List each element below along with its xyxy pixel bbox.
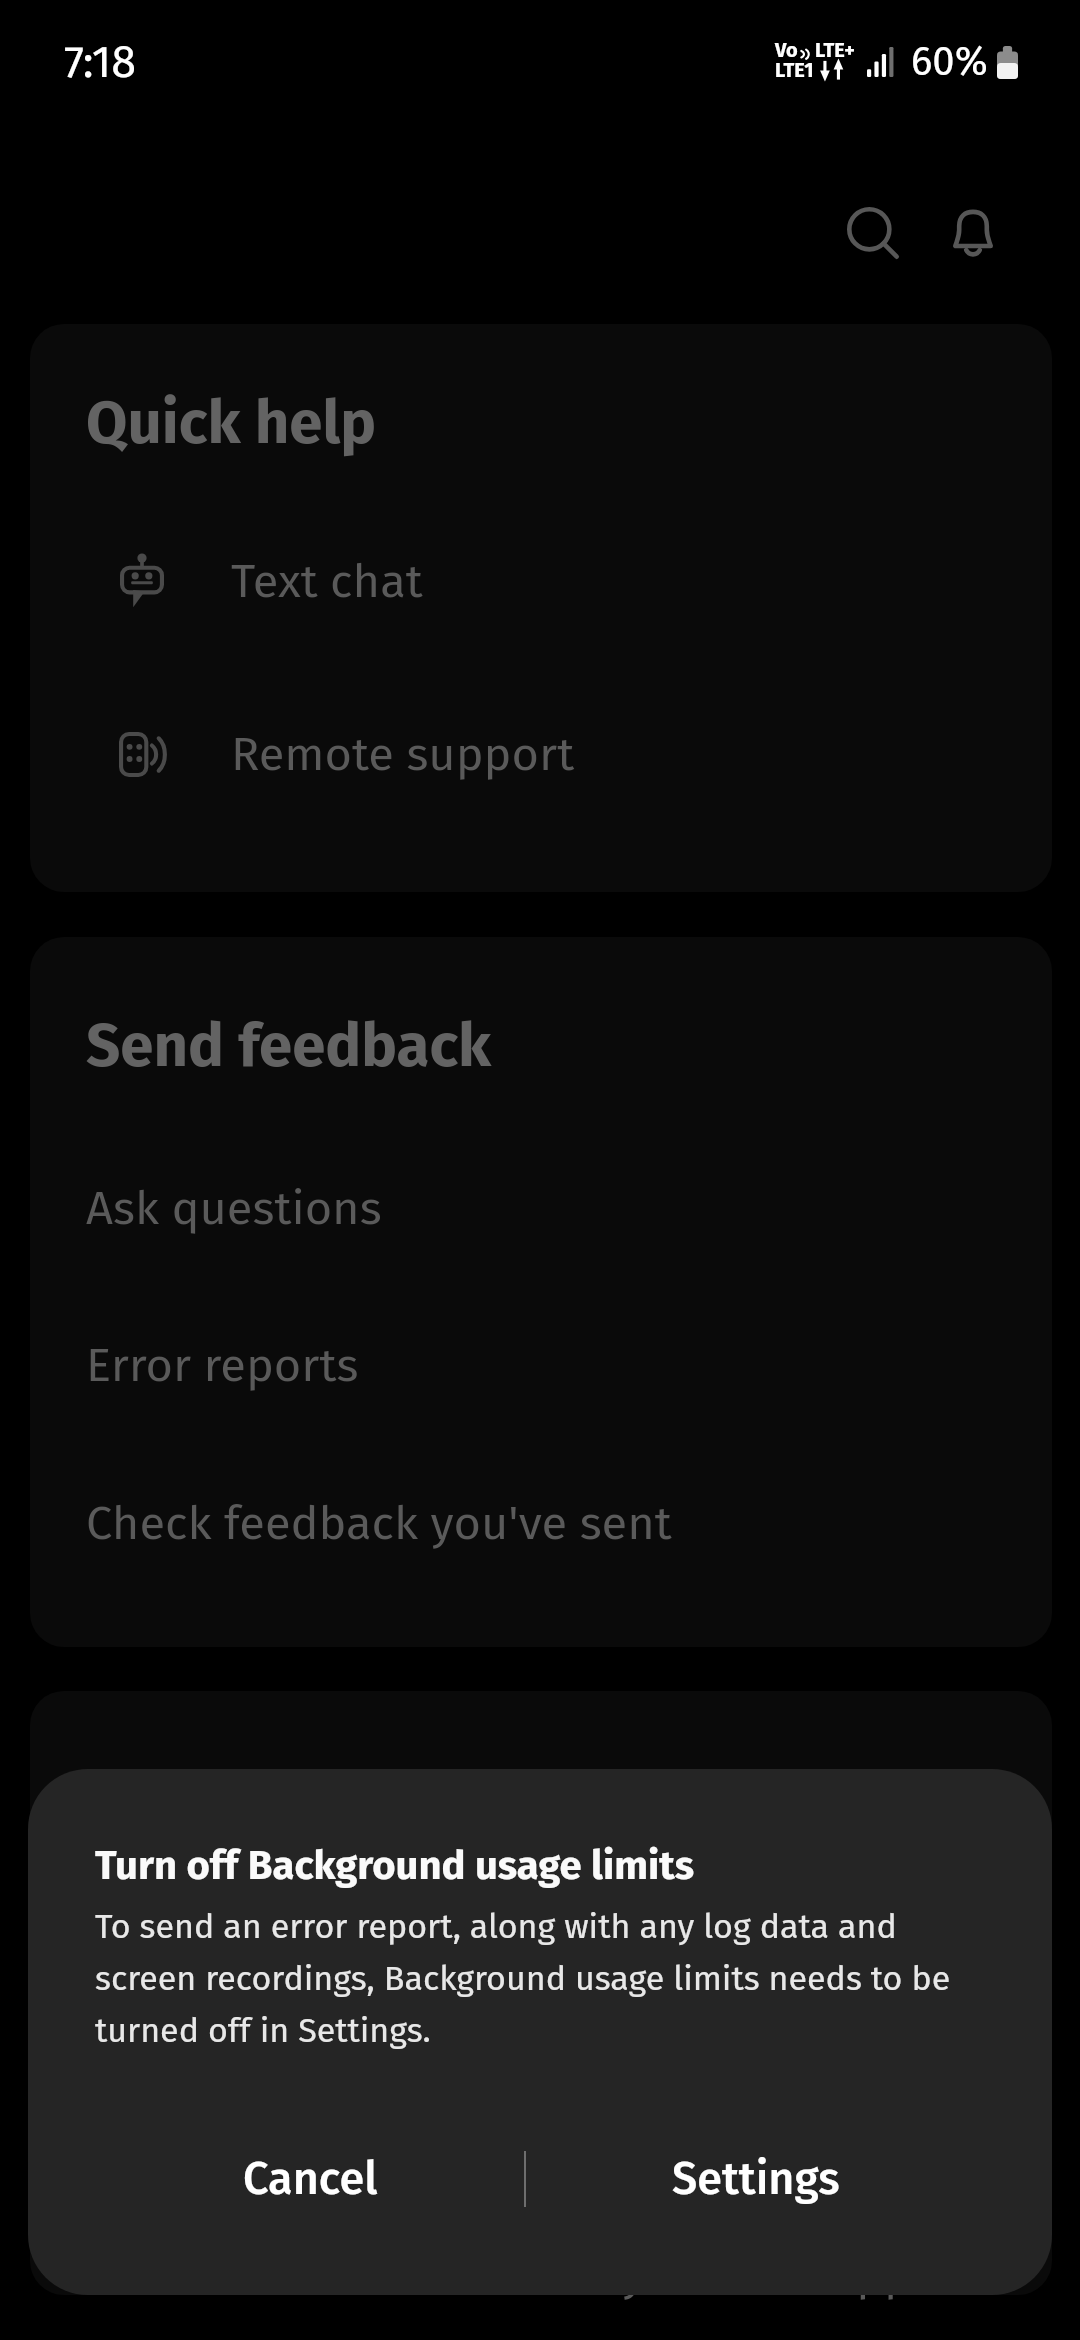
- button[interactable]: Remote support: [30, 699, 1052, 809]
- button[interactable]: Find a service centre: [30, 1907, 1052, 2017]
- staticText: Quick help: [86, 387, 377, 459]
- staticText: 7:18: [64, 35, 137, 89]
- staticText: Turn off Background usage limits: [95, 1842, 694, 1890]
- staticText: LTE+: [815, 38, 855, 62]
- staticText: Check feedback you've sent: [86, 1495, 672, 1551]
- staticText: Send feedback: [86, 1010, 492, 1082]
- button[interactable]: Cancel: [96, 2119, 524, 2239]
- staticText: 60%: [911, 38, 988, 86]
- staticText: Settings: [672, 2152, 840, 2206]
- button[interactable]: Settings: [526, 2119, 986, 2239]
- staticText: Ask questions: [86, 1180, 382, 1236]
- staticText: Find a service centre: [86, 1934, 523, 1990]
- button[interactable]: Check the status of Galaxy device suppor…: [86, 2220, 1026, 2328]
- staticText: To send an error report, along with any …: [95, 1898, 995, 2054]
- staticText: Error reports: [86, 1337, 359, 1393]
- staticText: LTE1: [775, 58, 814, 82]
- button[interactable]: Samsung Members community: [30, 2064, 1052, 2174]
- button[interactable]: Error reports: [30, 1310, 1052, 1420]
- staticText: Text chat: [231, 553, 423, 609]
- button[interactable]: Check feedback you've sent: [30, 1468, 1052, 1578]
- button[interactable]: Text chat: [30, 526, 1052, 636]
- staticText: Vo: [775, 38, 798, 62]
- button[interactable]: Ask questions: [30, 1153, 1052, 1263]
- staticText: Cancel: [243, 2152, 378, 2206]
- button[interactable]: Notifications: [901, 161, 1045, 305]
- staticText: More support: [86, 1764, 455, 1836]
- staticText: Remote support: [231, 726, 575, 782]
- button[interactable]: Search: [801, 161, 945, 305]
- staticText: Check the status of Galaxy device suppor…: [86, 2246, 975, 2302]
